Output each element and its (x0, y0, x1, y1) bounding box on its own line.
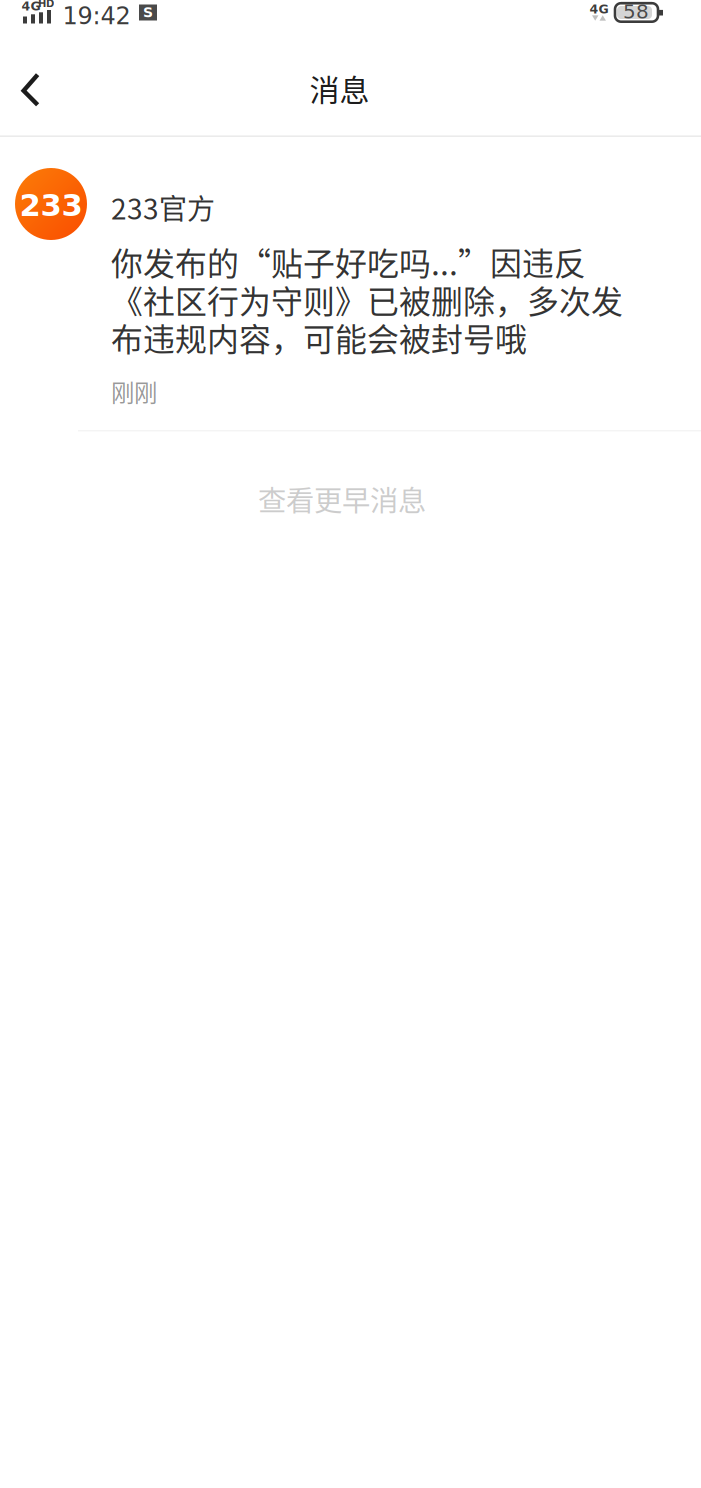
staticText: HD (38, 0, 54, 10)
staticText: 刚刚 (111, 374, 157, 408)
staticText: 消息 (309, 66, 369, 110)
staticText: S (143, 4, 153, 21)
button[interactable]: Back (0, 46, 70, 136)
staticText: 19:42 (62, 2, 130, 30)
staticText: 233 (19, 188, 82, 223)
staticText: 233官方 (111, 187, 215, 227)
staticText: 58 (623, 0, 649, 23)
staticText: 你发布的“贴子好吃吗...”因违反《社区行为守则》已被删除，多次发布违规内容，可… (111, 242, 623, 356)
button[interactable]: 233 (0, 137, 701, 431)
button[interactable]: 查看更早消息 (0, 431, 701, 566)
staticText: 4G (589, 2, 608, 17)
staticText: 4G (21, 0, 40, 14)
staticText: 查看更早消息 (258, 478, 426, 519)
